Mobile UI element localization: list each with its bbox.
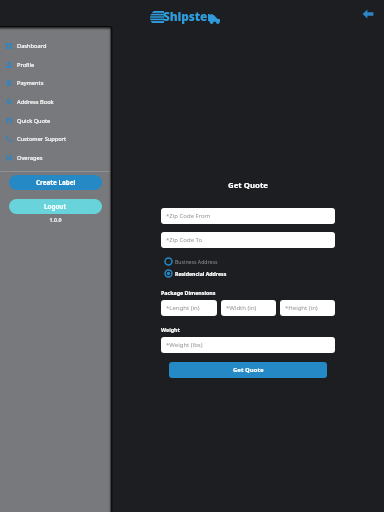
button[interactable]: Profile xyxy=(0,58,111,71)
button[interactable]: Logout xyxy=(9,199,102,214)
staticText: 1.0.0 xyxy=(0,216,111,223)
staticText: Get Quote xyxy=(161,180,335,191)
staticText: *Zip Code To xyxy=(166,236,203,244)
staticText: Overages xyxy=(17,154,43,162)
staticText: Weight xyxy=(161,326,180,333)
staticText: Create Label xyxy=(36,178,76,187)
button[interactable]: *Zip Code To xyxy=(161,232,335,248)
button[interactable]: Payments xyxy=(0,76,111,89)
staticText: Profile xyxy=(17,61,35,69)
button[interactable]: *Width (in) xyxy=(221,300,276,316)
staticText: Package Dimensions xyxy=(161,289,216,296)
button[interactable]: *Lenght (in) xyxy=(161,300,217,316)
button[interactable]: Dashboard xyxy=(0,39,111,52)
button[interactable]: *Weight (lbs) xyxy=(161,337,335,353)
staticText: *Lenght (in) xyxy=(166,304,200,312)
staticText: *Width (in) xyxy=(226,304,257,312)
staticText: Residencial Address xyxy=(175,270,227,277)
button[interactable]: *Zip Code From xyxy=(161,208,335,224)
staticText: Get Quote xyxy=(233,366,264,374)
staticText: Business Address xyxy=(175,258,218,265)
staticText: *Height (in) xyxy=(285,304,318,312)
button[interactable]: Get Quote xyxy=(169,362,327,378)
button[interactable]: Business Address xyxy=(161,257,218,266)
staticText: Shipster xyxy=(163,8,213,24)
button[interactable]: Customer Support xyxy=(0,132,111,145)
staticText: Dashboard xyxy=(17,42,47,50)
button[interactable]: Residencial Address xyxy=(161,269,227,278)
staticText: Payments xyxy=(17,79,44,87)
button[interactable]: *Height (in) xyxy=(280,300,335,316)
staticText: Quick Quote xyxy=(17,117,51,125)
button[interactable]: Create Label xyxy=(9,175,102,190)
button[interactable]: Overages xyxy=(0,151,111,164)
button[interactable]: Address Book xyxy=(0,95,111,108)
staticText: Logout xyxy=(44,202,67,211)
staticText: Address Book xyxy=(17,98,54,106)
button[interactable]: Back xyxy=(359,5,377,23)
staticText: *Zip Code From xyxy=(166,212,211,220)
staticText: Customer Support xyxy=(17,135,67,143)
staticText: *Weight (lbs) xyxy=(166,341,203,349)
button[interactable]: Quick Quote xyxy=(0,114,111,127)
